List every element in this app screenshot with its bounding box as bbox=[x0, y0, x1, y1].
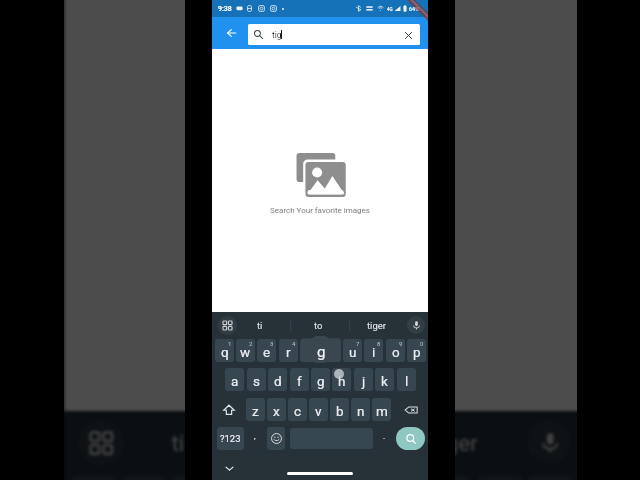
button[interactable]: e bbox=[171, 475, 216, 480]
button[interactable]: Clipboard bbox=[216, 312, 238, 338]
staticText: ?123 bbox=[220, 433, 241, 444]
button[interactable]: y bbox=[322, 339, 341, 362]
button[interactable]: u bbox=[343, 339, 362, 362]
button[interactable]: , bbox=[245, 427, 264, 450]
button[interactable]: k bbox=[375, 368, 394, 391]
staticText: tiger bbox=[367, 320, 387, 331]
button[interactable]: f bbox=[290, 368, 309, 391]
staticText: to bbox=[307, 430, 328, 456]
staticText: j bbox=[362, 373, 366, 389]
staticText: o bbox=[392, 344, 400, 360]
button[interactable]: Voice input bbox=[523, 411, 575, 473]
button[interactable]: ti bbox=[232, 312, 288, 338]
button[interactable]: ti bbox=[112, 411, 245, 473]
button[interactable]: z bbox=[246, 398, 265, 421]
button[interactable]: i bbox=[364, 339, 383, 362]
staticText: x bbox=[273, 403, 280, 419]
button[interactable]: o bbox=[386, 339, 405, 362]
button[interactable]: p bbox=[407, 339, 426, 362]
button[interactable]: . bbox=[375, 427, 393, 450]
button[interactable]: h bbox=[332, 368, 351, 391]
staticText: . bbox=[383, 432, 386, 441]
button[interactable]: e bbox=[257, 339, 276, 362]
staticText: r bbox=[286, 344, 291, 360]
staticText: tiger bbox=[433, 430, 480, 456]
staticText: h bbox=[338, 373, 346, 389]
button[interactable]: Backspace bbox=[396, 398, 425, 421]
button[interactable]: tiger bbox=[390, 411, 523, 473]
staticText: , bbox=[254, 432, 256, 441]
button[interactable]: c bbox=[288, 398, 307, 421]
staticText: c bbox=[294, 403, 302, 419]
staticText: i bbox=[372, 344, 376, 360]
button[interactable]: Clipboard bbox=[74, 411, 126, 473]
button[interactable]: d bbox=[268, 368, 287, 391]
staticText: d bbox=[274, 373, 282, 389]
button[interactable]: to bbox=[290, 312, 346, 338]
staticText: tig bbox=[272, 30, 282, 40]
staticText: 1 bbox=[228, 340, 232, 347]
button[interactable]: s bbox=[247, 368, 266, 391]
staticText: 2 bbox=[249, 340, 253, 347]
staticText: 4G bbox=[387, 7, 393, 12]
button[interactable]: q bbox=[215, 339, 234, 362]
button[interactable]: r bbox=[279, 339, 298, 362]
button[interactable]: l bbox=[397, 368, 416, 391]
staticText: e bbox=[263, 344, 271, 360]
button[interactable]: Emoji bbox=[267, 427, 285, 450]
button[interactable]: to bbox=[250, 411, 383, 473]
button[interactable]: Voice input bbox=[405, 312, 427, 338]
button[interactable]: x bbox=[267, 398, 286, 421]
button[interactable]: t bbox=[300, 339, 319, 362]
button[interactable]: a bbox=[225, 368, 244, 391]
button[interactable]: n bbox=[351, 398, 370, 421]
staticText: ti bbox=[257, 320, 263, 331]
button[interactable]: Back bbox=[219, 17, 243, 49]
staticText: g bbox=[317, 373, 325, 389]
staticText: z bbox=[252, 403, 259, 419]
button[interactable]: w bbox=[236, 339, 255, 362]
button[interactable]: Search bbox=[396, 427, 425, 450]
staticText: p bbox=[413, 344, 421, 360]
button[interactable]: j bbox=[354, 368, 373, 391]
button[interactable]: v bbox=[309, 398, 328, 421]
staticText: v bbox=[315, 403, 322, 419]
button[interactable]: tig bbox=[248, 24, 420, 45]
staticText: f bbox=[297, 373, 302, 389]
button[interactable]: ?123 bbox=[217, 427, 244, 450]
staticText: q bbox=[221, 344, 229, 360]
button[interactable]: Clear search bbox=[398, 25, 418, 45]
button[interactable]: Hide keyboard bbox=[221, 460, 237, 476]
staticText: 7 bbox=[356, 340, 360, 347]
staticText: g bbox=[317, 343, 326, 361]
button[interactable]: tiger bbox=[349, 312, 405, 338]
button[interactable]: b bbox=[330, 398, 349, 421]
button[interactable]: g bbox=[311, 368, 330, 391]
button[interactable]: Shift bbox=[215, 398, 242, 421]
button[interactable]: i bbox=[425, 475, 471, 480]
staticText: 4 bbox=[292, 340, 296, 347]
staticText: s bbox=[253, 373, 260, 389]
staticText: l bbox=[405, 373, 409, 389]
button[interactable]: m bbox=[372, 398, 391, 421]
